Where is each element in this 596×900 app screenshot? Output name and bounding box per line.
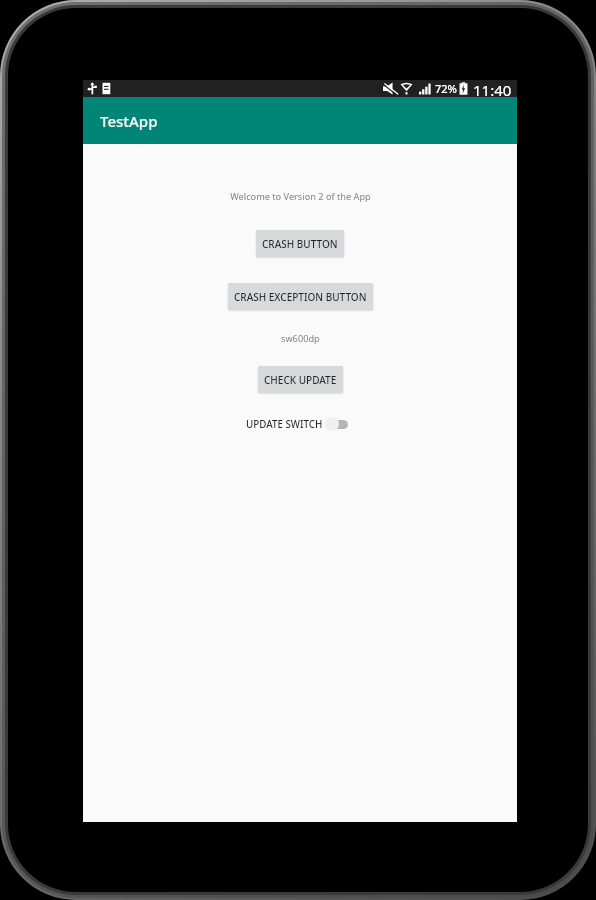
button[interactable]: CHECK UPDATE [258, 366, 343, 393]
staticText: CRASH BUTTON [262, 237, 338, 251]
staticText: 72% [435, 81, 457, 96]
staticText: TestApp [100, 111, 158, 131]
staticText: Welcome to Version 2 of the App [230, 190, 371, 203]
staticText: UPDATE SWITCH [246, 418, 323, 431]
staticText: CHECK UPDATE [264, 373, 337, 387]
staticText: 11:40 [473, 80, 512, 97]
button[interactable]: CRASH BUTTON [256, 230, 344, 257]
button[interactable]: CRASH EXCEPTION BUTTON [228, 283, 373, 310]
staticText: sw600dp [281, 332, 320, 345]
button[interactable]: Update switch [325, 416, 348, 432]
staticText: CRASH EXCEPTION BUTTON [234, 290, 367, 304]
